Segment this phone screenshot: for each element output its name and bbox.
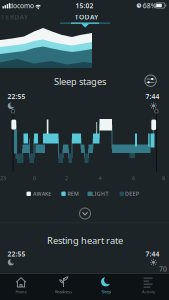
staticText: 4 [98, 175, 101, 182]
staticText: TODAY [75, 13, 98, 21]
staticText: 15:02 [75, 1, 93, 10]
button[interactable]: Home [0, 273, 42, 300]
staticText: YESTERDAY [0, 13, 28, 21]
staticText: 22:55 [7, 250, 25, 258]
staticText: Home [15, 289, 26, 294]
button[interactable]: YESTERDAY [0, 10, 33, 23]
staticText: 70 [159, 265, 167, 273]
staticText: Resting heart rate [47, 234, 123, 246]
button[interactable]: Expand sleep stages [78, 206, 92, 220]
staticText: Sleep stages [54, 75, 106, 87]
staticText: 68% [143, 1, 157, 10]
button[interactable]: TODAY [56, 10, 116, 23]
staticText: Activity [142, 289, 155, 294]
button[interactable]: Sleep stage options [143, 73, 159, 89]
button[interactable]: Activity [127, 273, 169, 300]
staticText: 22:55 [7, 92, 25, 101]
staticText: Readiness [55, 289, 72, 294]
staticText: 7:44 [145, 92, 159, 101]
staticText: 0 [33, 175, 36, 182]
staticText: AWAKE [33, 190, 51, 197]
staticText: Sleep [101, 289, 110, 294]
staticText: LIGHT [91, 190, 108, 197]
staticText: DEEP [125, 190, 139, 197]
staticText: 7:44 [145, 250, 159, 258]
staticText: 23 [0, 175, 6, 182]
staticText: 6 [132, 175, 135, 182]
staticText: REM [67, 190, 79, 197]
button[interactable]: Readiness [42, 273, 84, 300]
staticText: docomo [9, 1, 34, 10]
staticText: 2 [65, 175, 68, 182]
staticText: 8 [162, 175, 165, 182]
button[interactable]: Sleep [84, 273, 127, 300]
